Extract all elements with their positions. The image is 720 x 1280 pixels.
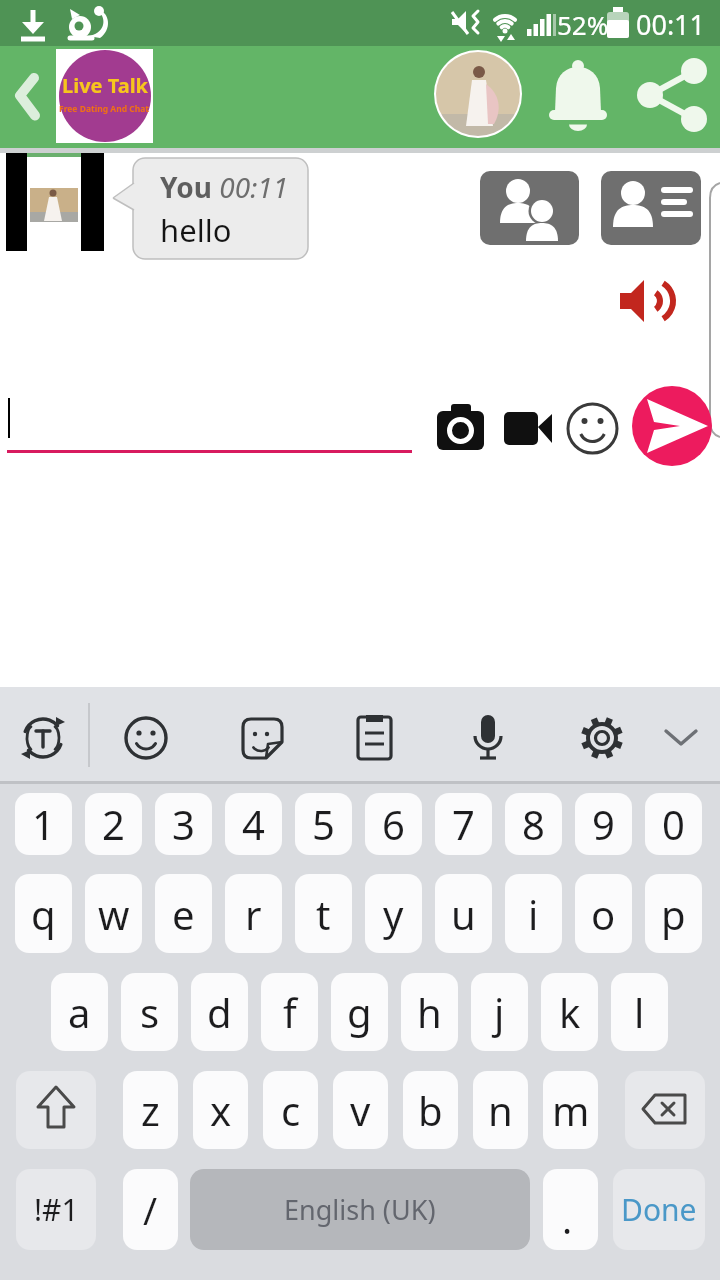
button[interactable]: a bbox=[51, 973, 108, 1051]
button[interactable]: c bbox=[263, 1071, 318, 1149]
button[interactable]: v bbox=[333, 1071, 388, 1149]
button[interactable]: n bbox=[473, 1071, 528, 1149]
staticText: You bbox=[160, 168, 212, 206]
button[interactable] bbox=[608, 697, 696, 773]
staticText: e bbox=[172, 887, 195, 941]
button[interactable] bbox=[8, 697, 96, 773]
staticText: j bbox=[494, 985, 505, 1039]
button[interactable]: u bbox=[435, 874, 492, 953]
button[interactable]: l bbox=[611, 973, 668, 1051]
staticText: . bbox=[562, 1193, 573, 1245]
button[interactable]: e bbox=[155, 874, 212, 953]
button[interactable]: Live Talk bbox=[56, 49, 153, 143]
button[interactable]: i bbox=[505, 874, 562, 953]
button[interactable]: o bbox=[575, 874, 632, 953]
staticText: 8 bbox=[522, 797, 545, 851]
button[interactable]: x bbox=[193, 1071, 248, 1149]
button[interactable] bbox=[566, 402, 619, 455]
button[interactable] bbox=[6, 153, 104, 251]
staticText: 1 bbox=[32, 797, 55, 851]
button[interactable] bbox=[625, 1071, 705, 1149]
button[interactable]: w bbox=[85, 874, 142, 953]
staticText: 9 bbox=[592, 797, 615, 851]
staticText: g bbox=[347, 985, 372, 1039]
button[interactable] bbox=[408, 697, 496, 773]
button[interactable]: 1 bbox=[15, 793, 72, 855]
button[interactable] bbox=[108, 697, 196, 773]
staticText: p bbox=[661, 887, 686, 941]
button[interactable] bbox=[208, 697, 296, 773]
staticText: hello bbox=[160, 209, 232, 251]
button[interactable] bbox=[632, 386, 712, 466]
staticText: !#1 bbox=[34, 1189, 79, 1230]
staticText: o bbox=[591, 887, 616, 941]
button[interactable] bbox=[433, 400, 489, 454]
staticText: i bbox=[528, 887, 539, 941]
button[interactable]: 2 bbox=[85, 793, 142, 855]
staticText: s bbox=[140, 985, 160, 1039]
button[interactable]: q bbox=[15, 874, 72, 953]
staticText: / bbox=[143, 1184, 158, 1236]
button[interactable]: z bbox=[123, 1071, 178, 1149]
button[interactable]: b bbox=[403, 1071, 458, 1149]
staticText: r bbox=[245, 887, 262, 941]
staticText: 6 bbox=[382, 797, 405, 851]
staticText: z bbox=[141, 1083, 160, 1137]
button[interactable] bbox=[616, 276, 670, 328]
staticText: l bbox=[634, 985, 645, 1039]
button[interactable]: y bbox=[365, 874, 422, 953]
button[interactable]: s bbox=[121, 973, 178, 1051]
button[interactable] bbox=[500, 406, 556, 450]
button[interactable]: Done bbox=[613, 1169, 705, 1250]
staticText: c bbox=[281, 1083, 301, 1137]
staticText: w bbox=[98, 887, 130, 941]
button[interactable]: 0 bbox=[645, 793, 702, 855]
staticText: u bbox=[451, 887, 476, 941]
button[interactable]: k bbox=[541, 973, 598, 1051]
button[interactable] bbox=[630, 46, 720, 148]
button[interactable] bbox=[480, 171, 579, 245]
staticText: y bbox=[383, 887, 404, 941]
staticText: 00:11 bbox=[212, 168, 289, 206]
staticText: 5 bbox=[312, 797, 335, 851]
button[interactable]: g bbox=[331, 973, 388, 1051]
button[interactable]: p bbox=[645, 874, 702, 953]
staticText: 3 bbox=[172, 797, 195, 851]
button[interactable]: d bbox=[191, 973, 248, 1051]
button[interactable]: . bbox=[543, 1169, 598, 1250]
staticText: Free Dating And Chat bbox=[59, 103, 150, 115]
button[interactable] bbox=[540, 54, 616, 142]
staticText: 4 bbox=[242, 797, 265, 851]
button[interactable]: m bbox=[543, 1071, 598, 1149]
button[interactable] bbox=[601, 171, 701, 245]
staticText: 7 bbox=[452, 797, 475, 851]
staticText: m bbox=[552, 1083, 590, 1137]
button[interactable]: j bbox=[471, 973, 528, 1051]
button[interactable] bbox=[308, 697, 396, 773]
button[interactable]: 6 bbox=[365, 793, 422, 855]
button[interactable] bbox=[508, 697, 596, 773]
button[interactable] bbox=[434, 50, 522, 138]
button[interactable]: !#1 bbox=[16, 1169, 96, 1250]
staticText: t bbox=[316, 887, 331, 941]
button[interactable]: 3 bbox=[155, 793, 212, 855]
staticText: k bbox=[559, 985, 581, 1039]
staticText: n bbox=[488, 1083, 513, 1137]
button[interactable]: 9 bbox=[575, 793, 632, 855]
button[interactable]: 7 bbox=[435, 793, 492, 855]
staticText: b bbox=[418, 1083, 443, 1137]
button[interactable]: 5 bbox=[295, 793, 352, 855]
staticText: h bbox=[417, 985, 442, 1039]
button[interactable]: / bbox=[123, 1169, 178, 1250]
button[interactable]: 4 bbox=[225, 793, 282, 855]
staticText: 52% bbox=[557, 7, 609, 42]
button[interactable]: 8 bbox=[505, 793, 562, 855]
button[interactable]: r bbox=[225, 874, 282, 953]
button[interactable]: t bbox=[295, 874, 352, 953]
button[interactable]: English (UK) bbox=[190, 1169, 530, 1250]
button[interactable]: f bbox=[261, 973, 318, 1051]
button[interactable] bbox=[0, 46, 60, 148]
staticText: f bbox=[283, 985, 297, 1039]
button[interactable] bbox=[16, 1071, 96, 1149]
button[interactable]: h bbox=[401, 973, 458, 1051]
